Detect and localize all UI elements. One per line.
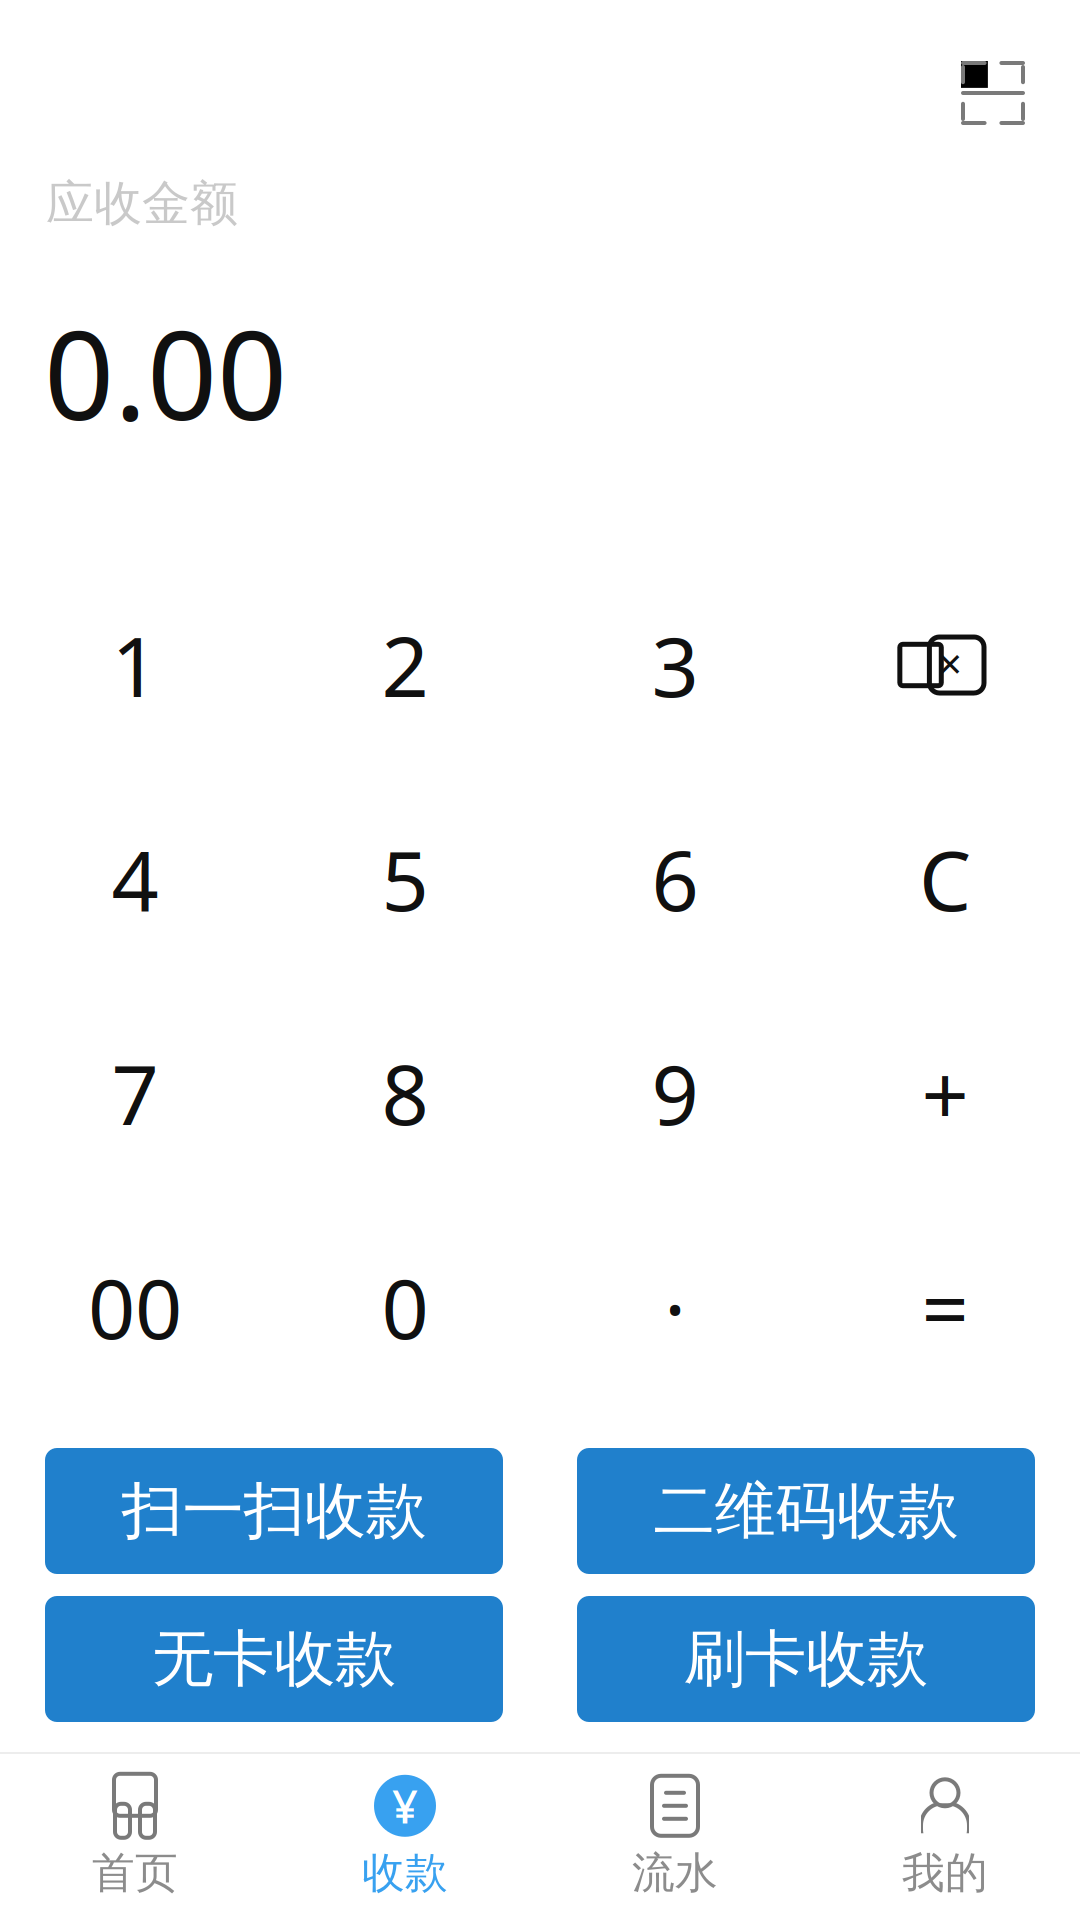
button[interactable]: 9 (540, 986, 810, 1200)
staticText: ✕ (936, 647, 963, 683)
button[interactable]: 二维码收款 (577, 1448, 1035, 1574)
staticText: 3 (651, 610, 698, 720)
staticText: 收款 (362, 1847, 448, 1899)
button[interactable]: 8 (270, 986, 540, 1200)
button[interactable]: 00 (0, 1200, 270, 1414)
staticText: = (921, 1252, 968, 1362)
button[interactable]: 6 (540, 772, 810, 986)
staticText: 我的 (902, 1847, 988, 1899)
staticText: 1 (111, 610, 158, 720)
button[interactable]: = (810, 1200, 1080, 1414)
button[interactable]: 首页 (0, 1762, 270, 1912)
button[interactable]: 2 (270, 558, 540, 772)
button[interactable]: ¥ (270, 1762, 540, 1912)
staticText: 8 (381, 1038, 428, 1148)
button[interactable]: 无卡收款 (45, 1596, 503, 1722)
button[interactable]: 5 (270, 772, 540, 986)
staticText: ¥ (392, 1776, 418, 1836)
button[interactable]: 我的 (810, 1762, 1080, 1912)
staticText: 0 (381, 1252, 428, 1362)
button[interactable]: Delete (810, 558, 1080, 772)
staticText: 2 (381, 610, 428, 720)
button[interactable]: C (810, 772, 1080, 986)
staticText: 00 (88, 1252, 182, 1362)
staticText: 9 (651, 1038, 698, 1148)
button[interactable]: 4 (0, 772, 270, 986)
button[interactable]: 3 (540, 558, 810, 772)
staticText: 0.00 (44, 291, 287, 454)
staticText: 首页 (92, 1847, 178, 1899)
button[interactable]: 刷卡收款 (577, 1596, 1035, 1722)
staticText: 无卡收款 (152, 1621, 396, 1697)
staticText: + (921, 1038, 968, 1148)
button[interactable]: + (810, 986, 1080, 1200)
staticText: 6 (651, 824, 698, 934)
button[interactable]: 扫一扫收款 (45, 1448, 503, 1574)
staticText: 二维码收款 (653, 1473, 958, 1549)
button[interactable]: 7 (0, 986, 270, 1200)
staticText: C (919, 824, 971, 934)
button[interactable]: 1 (0, 558, 270, 772)
button[interactable]: 流水 (540, 1762, 810, 1912)
staticText: 4 (111, 824, 158, 934)
button[interactable]: · (540, 1200, 810, 1414)
staticText: · (664, 1252, 686, 1362)
button[interactable]: Scan (938, 38, 1048, 148)
staticText: 流水 (632, 1847, 718, 1899)
staticText: 刷卡收款 (684, 1621, 928, 1697)
staticText: 5 (381, 824, 428, 934)
staticText: 扫一扫收款 (121, 1473, 426, 1549)
button[interactable]: 0 (270, 1200, 540, 1414)
staticText: 7 (111, 1038, 158, 1148)
staticText: 应收金额 (46, 174, 238, 233)
